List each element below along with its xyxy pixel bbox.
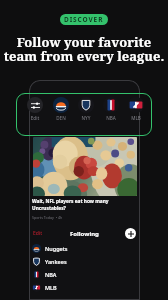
staticText: Wait, NFL players eat how many Uncrustab…: [32, 198, 109, 212]
button[interactable]: NBA: [29, 268, 140, 281]
button[interactable]: Edit: [24, 97, 46, 121]
staticText: NBA: [45, 271, 57, 278]
staticText: Following: [70, 230, 99, 238]
button[interactable]: DEN: [50, 97, 72, 121]
button[interactable]: Add: [125, 228, 136, 239]
staticText: MLB: [125, 115, 147, 121]
staticText: Follow your favorite team from every lea…: [0, 33, 168, 65]
button[interactable]: Yankees: [29, 255, 140, 268]
button[interactable]: NBA: [100, 97, 122, 121]
button[interactable]: Edit: [33, 230, 43, 237]
button[interactable]: NYY: [75, 97, 97, 121]
staticText: DEN: [50, 115, 72, 121]
staticText: Nuggets: [45, 245, 68, 252]
staticText: DISCOVER: [64, 15, 104, 24]
button[interactable]: MLB: [29, 281, 140, 294]
staticText: Edit: [24, 115, 46, 121]
button[interactable]: Nuggets: [29, 242, 140, 255]
staticText: NYY: [75, 115, 97, 121]
staticText: MLB: [45, 284, 57, 291]
button[interactable]: DISCOVER: [60, 14, 108, 25]
staticText: NBA: [100, 115, 122, 121]
staticText: Yankees: [45, 258, 67, 265]
staticText: Sports Today • 4h: [32, 215, 63, 220]
button[interactable]: MLB: [125, 97, 147, 121]
